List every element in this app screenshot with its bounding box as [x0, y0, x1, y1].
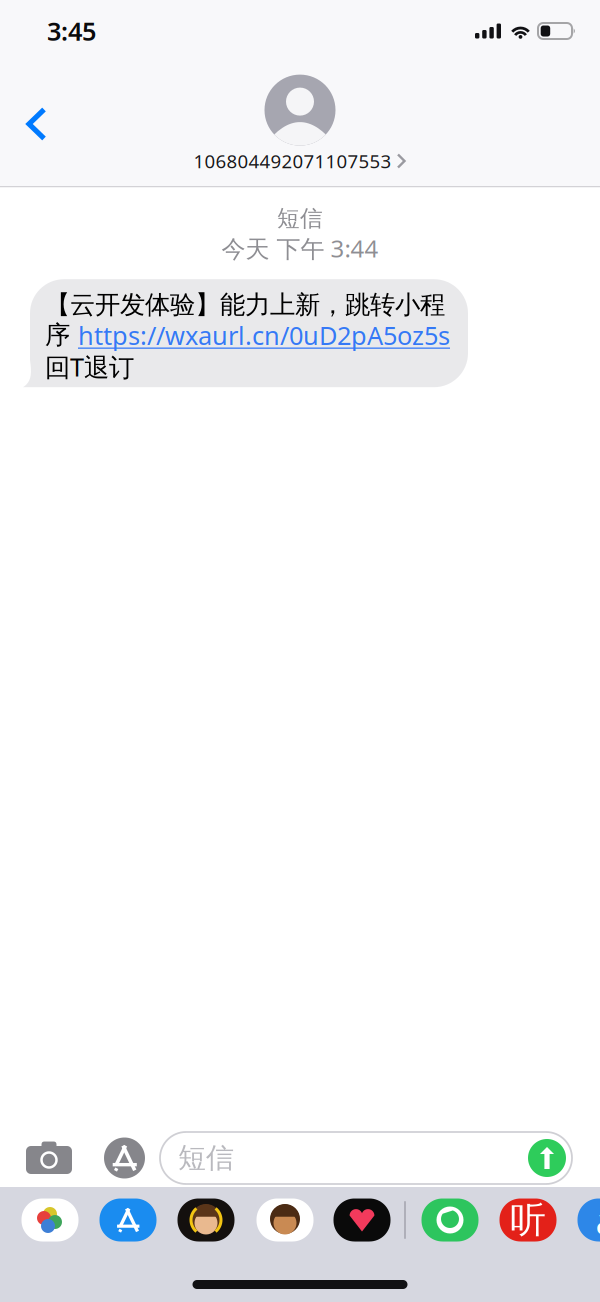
button[interactable]: Back [12, 93, 62, 155]
staticText: à [595, 1195, 600, 1245]
button[interactable]: 短信 [160, 1132, 572, 1184]
button[interactable]: App Store [104, 1137, 160, 1178]
staticText: 听 [510, 1198, 546, 1242]
staticText: 今天 下午 3:44 [221, 232, 378, 264]
staticText: 短信 [178, 1141, 234, 1175]
button[interactable]: 106804492071107553 [193, 75, 406, 173]
button[interactable]: Memoji [177, 1198, 234, 1241]
staticText: 3:45 [47, 14, 96, 48]
staticText: 【云开发体验】能力上新，跳转小程 [45, 289, 445, 320]
button[interactable]: Camera [0, 1131, 104, 1185]
staticText: 106804492071107553 [193, 149, 391, 173]
button[interactable]: Memoji Stickers [256, 1198, 313, 1241]
button[interactable]: Digital Touch [333, 1198, 390, 1241]
staticText: 回T退订 [45, 350, 134, 384]
button[interactable]: Translate [577, 1198, 600, 1241]
button[interactable]: Photos [21, 1198, 78, 1241]
staticText: https://wxaurl.cn/0uD2pA5oz5s [78, 318, 450, 352]
button[interactable]: Ting [499, 1198, 556, 1241]
button[interactable]: WeChat [421, 1198, 478, 1241]
staticText: 序 [45, 320, 78, 351]
staticText: 短信 [277, 204, 323, 232]
button[interactable]: App Store [99, 1198, 156, 1241]
